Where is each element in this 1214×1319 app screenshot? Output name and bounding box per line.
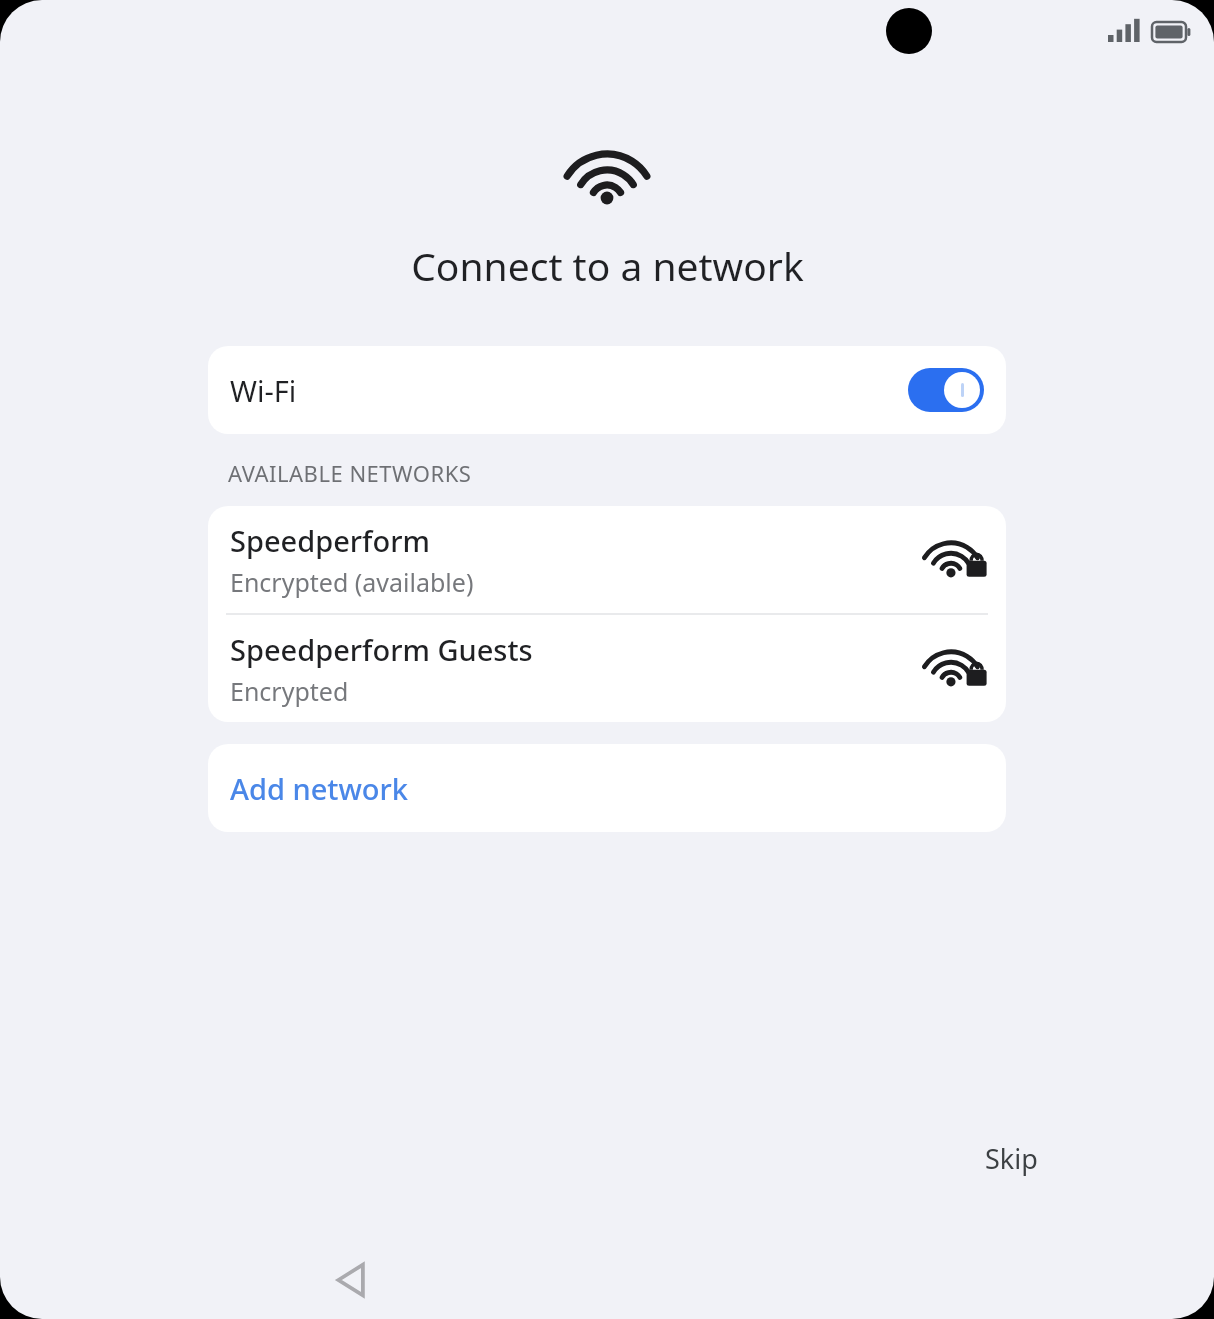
button[interactable]: Speedperform Guests [208, 615, 1006, 722]
button[interactable]: Wi-Fi [208, 346, 1006, 434]
staticText: Encrypted (available) [230, 565, 474, 599]
staticText: Add network [230, 769, 409, 808]
staticText: Speedperform Guests [230, 630, 533, 669]
button[interactable]: Back [298, 1241, 406, 1319]
staticText: Skip [985, 1140, 1038, 1177]
button[interactable]: Wi-Fi toggle, on [908, 368, 984, 412]
staticText: Encrypted [230, 674, 349, 708]
button[interactable]: Add network [208, 744, 1006, 832]
staticText: Connect to a network [411, 239, 804, 292]
staticText: Wi-Fi [230, 371, 297, 410]
button[interactable]: Skip [969, 1130, 1054, 1187]
staticText: Speedperform [230, 521, 430, 560]
staticText: AVAILABLE NETWORKS [228, 458, 472, 488]
button[interactable]: Speedperform [208, 506, 1006, 613]
